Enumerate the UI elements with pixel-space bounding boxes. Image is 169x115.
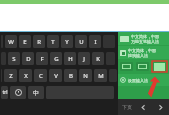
- staticText: H: [68, 55, 73, 63]
- staticText: E: [23, 38, 27, 46]
- staticText: C: [39, 72, 43, 80]
- button[interactable]: Z: [4, 69, 17, 82]
- button[interactable]: V: [49, 69, 62, 82]
- staticText: Y: [65, 38, 69, 46]
- button[interactable]: K: [92, 52, 104, 65]
- staticText: V: [54, 72, 58, 80]
- button[interactable]: 中: [28, 86, 44, 99]
- staticText: R: [37, 38, 41, 46]
- staticText: U: [79, 38, 84, 46]
- button[interactable]: Keyboard layout 1: [120, 62, 133, 71]
- staticText: T: [51, 38, 55, 46]
- button[interactable]: M: [94, 69, 107, 82]
- staticText: 中文简体，中国: [131, 34, 159, 39]
- staticText: 中: [33, 89, 39, 97]
- staticText: B: [69, 72, 73, 80]
- staticText: N: [83, 72, 88, 80]
- staticText: J: [83, 55, 85, 63]
- staticText: 搜狗输入法: [128, 53, 148, 58]
- button[interactable]: R: [33, 35, 45, 48]
- button[interactable]: U: [75, 35, 87, 48]
- staticText: W: [8, 38, 14, 46]
- button[interactable]: B: [64, 69, 77, 82]
- button[interactable]: G: [50, 52, 62, 65]
- button[interactable]: W: [5, 35, 17, 48]
- staticText: 下页: [122, 104, 132, 110]
- button[interactable]: T: [47, 35, 59, 48]
- button[interactable]: 中文简体，中国: [118, 32, 169, 45]
- staticText: G: [54, 55, 59, 63]
- button[interactable]: 下页: [118, 99, 135, 115]
- staticText: F: [40, 55, 44, 63]
- button[interactable]: J: [78, 52, 90, 65]
- button[interactable]: I: [89, 35, 101, 48]
- staticText: 设置输入法: [128, 78, 148, 83]
- staticText: trl: [2, 89, 8, 96]
- button[interactable]: C: [34, 69, 47, 82]
- staticText: D: [26, 55, 31, 63]
- button[interactable]: Keyboard layout 2: [136, 62, 149, 71]
- button[interactable]: trl: [1, 86, 8, 99]
- button[interactable]: F: [36, 52, 48, 65]
- staticText: X: [24, 72, 28, 80]
- staticText: M: [98, 72, 104, 80]
- staticText: I: [94, 38, 97, 46]
- button[interactable]: 设置输入法: [118, 74, 169, 86]
- button[interactable]: Next: [152, 99, 169, 115]
- button[interactable]: N: [79, 69, 92, 82]
- button[interactable]: D: [22, 52, 34, 65]
- button[interactable]: Previous: [135, 99, 152, 115]
- staticText: K: [96, 55, 100, 63]
- button[interactable]: Y: [61, 35, 73, 48]
- button[interactable]: X: [19, 69, 32, 82]
- staticText: Z: [9, 72, 13, 80]
- button[interactable]: Selected keyboard: [152, 61, 167, 72]
- button[interactable]: 中文简体，中国: [118, 46, 169, 59]
- button[interactable]: H: [64, 52, 76, 65]
- button[interactable]: S: [8, 52, 20, 65]
- staticText: 中文简体，中国: [128, 48, 156, 53]
- staticText: S: [12, 55, 16, 63]
- button[interactable]: Emoji: [10, 86, 26, 99]
- staticText: 万能五笔输入法: [131, 39, 159, 44]
- button[interactable]: E: [19, 35, 31, 48]
